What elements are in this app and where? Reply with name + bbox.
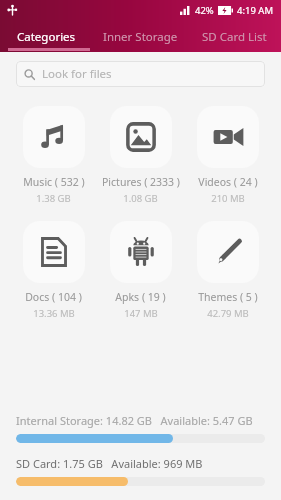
button[interactable]: Themes: [184, 217, 271, 324]
staticText: 1.08 GB: [123, 192, 158, 205]
staticText: Internal Storage: 14.82 GB Available: 5.…: [16, 413, 253, 428]
staticText: SD Card: 1.75 GB Available: 969 MB: [16, 456, 203, 471]
button[interactable]: Look for files: [16, 61, 265, 87]
button[interactable]: Apks: [97, 217, 184, 324]
staticText: Videos ( 24 ): [198, 175, 258, 189]
button[interactable]: SD Card List: [187, 29, 281, 45]
staticText: 42.79 MB: [207, 307, 249, 320]
button[interactable]: Categories: [0, 29, 93, 45]
staticText: Apks ( 19 ): [115, 290, 166, 304]
staticText: Pictures ( 2333 ): [102, 175, 180, 189]
staticText: 147 MB: [124, 307, 158, 320]
staticText: Themes ( 5 ): [198, 290, 258, 304]
staticText: 1.38 GB: [36, 192, 71, 205]
button[interactable]: Docs: [10, 217, 97, 324]
staticText: SD Card List: [202, 29, 267, 45]
staticText: 210 MB: [211, 192, 245, 205]
staticText: Categories: [17, 29, 76, 45]
button[interactable]: Music: [10, 102, 97, 209]
button[interactable]: Inner Storage: [93, 29, 187, 45]
staticText: 13.36 MB: [33, 307, 75, 320]
staticText: Docs ( 104 ): [25, 290, 82, 304]
button[interactable]: Pictures: [97, 102, 184, 209]
staticText: Look for files: [42, 66, 112, 82]
staticText: 42%: [195, 4, 214, 17]
staticText: Music ( 532 ): [23, 175, 85, 189]
staticText: Inner Storage: [103, 29, 178, 45]
staticText: 4:19 AM: [237, 4, 274, 17]
button[interactable]: Videos: [184, 102, 271, 209]
